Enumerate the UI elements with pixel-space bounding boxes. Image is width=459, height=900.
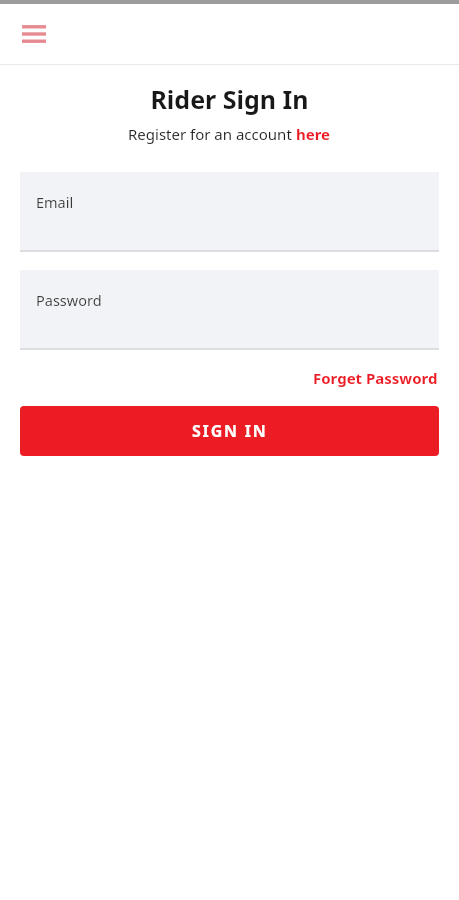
staticText: SIGN IN [192, 420, 268, 442]
button[interactable]: Forget Password [310, 365, 441, 391]
staticText: Register for an account [128, 124, 296, 144]
staticText: Rider Sign In [150, 82, 309, 116]
button[interactable]: SIGN IN [20, 406, 439, 456]
button[interactable]: Password [20, 270, 439, 350]
button[interactable]: here [296, 124, 331, 144]
staticText: Forget Password [313, 368, 438, 388]
button[interactable]: Open navigation menu [12, 12, 56, 56]
staticText: Email [36, 192, 74, 212]
staticText: here [296, 124, 331, 144]
button[interactable]: Email [20, 172, 439, 252]
staticText: Password [36, 290, 102, 310]
